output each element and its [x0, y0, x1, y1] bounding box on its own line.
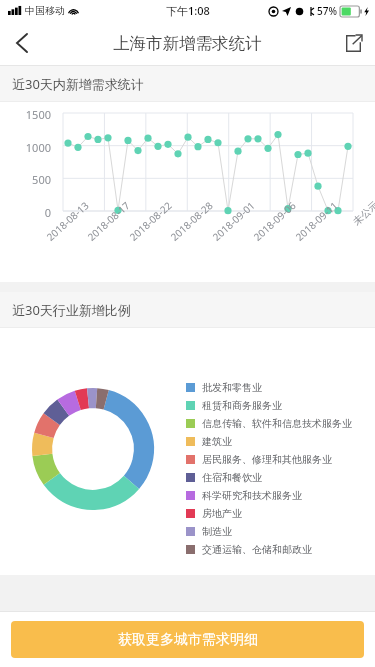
staticText: 2018-08-13 [34, 198, 91, 252]
staticText: 租赁和商务服务业 [202, 399, 282, 412]
staticText: 居民服务、修理和其他服务业 [202, 453, 332, 466]
staticText: 500 [0, 172, 51, 187]
staticText: 批发和零售业 [202, 381, 262, 394]
staticText: 下午1:08 [166, 3, 210, 18]
staticText: 中国移动 [25, 4, 65, 17]
staticText: 1000 [0, 140, 51, 155]
staticText: 57% [317, 4, 337, 18]
staticText: 2018-08-28 [158, 198, 215, 252]
staticText: 上海市新增需求统计 [113, 33, 262, 54]
staticText: 信息传输、软件和信息技术服务业 [202, 417, 352, 430]
staticText: 获取更多城市需求明细 [118, 631, 258, 649]
staticText: 住宿和餐饮业 [202, 471, 262, 484]
staticText: 建筑业 [202, 435, 232, 448]
staticText: 2018-09-11 [283, 198, 340, 252]
button[interactable]: 返回 [0, 21, 44, 65]
button[interactable]: 分享 [331, 21, 375, 65]
staticText: 近30天行业新增比例 [12, 301, 131, 319]
staticText: 2018-09-06 [241, 198, 298, 252]
staticText: 2018-08-22 [117, 198, 174, 252]
staticText: 交通运输、仓储和邮政业 [202, 543, 312, 556]
staticText: 2018-08-17 [75, 198, 132, 252]
staticText: 房地产业 [202, 507, 242, 520]
staticText: 1500 [0, 107, 51, 122]
button[interactable]: 获取更多城市需求明细 [11, 621, 364, 658]
staticText: 2018-09-01 [200, 198, 257, 252]
staticText: 0 [0, 205, 51, 220]
staticText: 科学研究和技术服务业 [202, 489, 302, 502]
staticText: 未公示 [325, 198, 375, 251]
staticText: 制造业 [202, 525, 232, 538]
staticText: 近30天内新增需求统计 [12, 75, 144, 93]
